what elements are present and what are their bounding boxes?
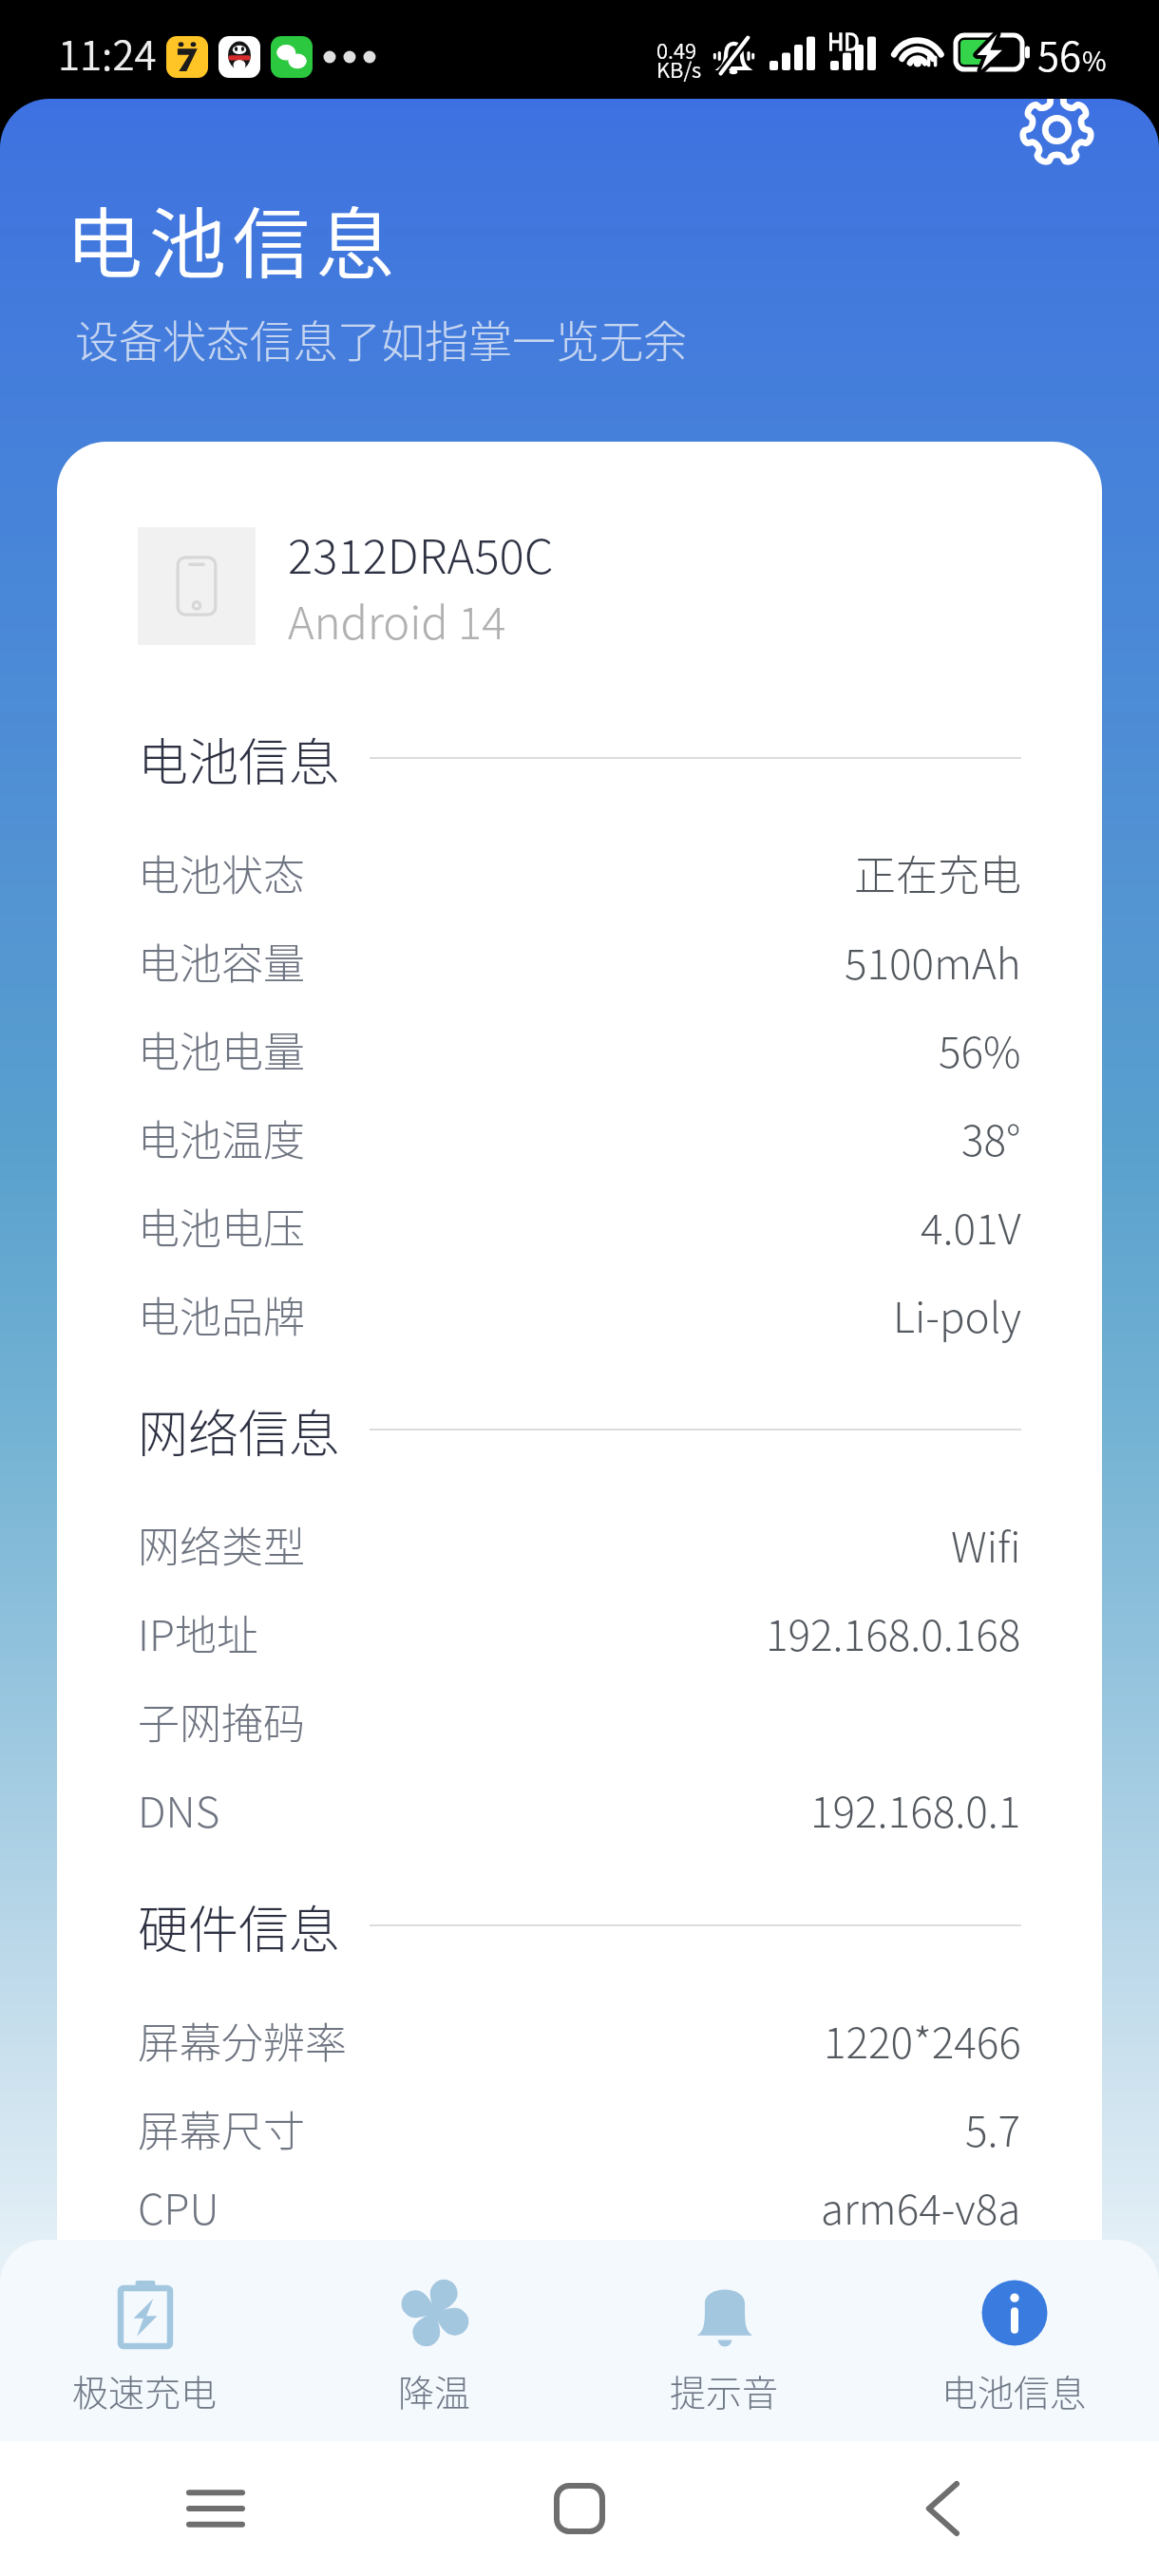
staticText: 56% (939, 1019, 1021, 1080)
button[interactable]: Recents (171, 2464, 260, 2553)
button[interactable]: Home (535, 2464, 624, 2553)
staticText: 电池容量 (138, 931, 305, 992)
staticText: HD (827, 24, 860, 57)
button[interactable]: 网络类型 (138, 1500, 1021, 1588)
staticText: 设备状态信息了如指掌一览无余 (75, 307, 687, 370)
staticText: 极速充电 (72, 2364, 218, 2416)
button[interactable]: 电池电压 (138, 1182, 1021, 1270)
staticText: 网络类型 (138, 1514, 305, 1575)
staticText: 屏幕尺寸 (138, 2098, 305, 2159)
staticText: 电池温度 (138, 1108, 305, 1168)
staticText: 正在充电 (854, 843, 1021, 903)
button[interactable]: 屏幕尺寸 (138, 2084, 1021, 2172)
staticText: 电池电压 (138, 1196, 305, 1257)
staticText: Li-poly (893, 1284, 1021, 1345)
button[interactable]: 电池信息 (869, 2240, 1159, 2416)
staticText: 网络信息 (138, 1394, 339, 1465)
button[interactable]: CPU (138, 2172, 1021, 2240)
button[interactable]: IP地址 (138, 1588, 1021, 1676)
staticText: 1220*2466 (824, 2010, 1021, 2071)
staticText: 38° (961, 1108, 1021, 1168)
staticText: 5100mAh (845, 931, 1021, 992)
staticText: Android 14 (288, 587, 506, 652)
staticText: 电池电量 (138, 1019, 305, 1080)
button[interactable]: 电池温度 (138, 1093, 1021, 1182)
button[interactable]: 电池品牌 (138, 1270, 1021, 1358)
staticText: 降温 (398, 2364, 471, 2416)
button[interactable]: 屏幕分辨率 (138, 1996, 1021, 2084)
staticText: 屏幕分辨率 (138, 2010, 347, 2071)
button[interactable]: DNS (138, 1765, 1021, 1853)
staticText: 2312DRA50C (288, 520, 554, 587)
button[interactable]: 极速充电 (0, 2240, 290, 2416)
staticText: 11:24 (58, 24, 157, 82)
staticText: Wifi (951, 1514, 1021, 1575)
button[interactable]: Back (899, 2464, 988, 2553)
button[interactable]: 电池电量 (138, 1005, 1021, 1093)
staticText: 5.7 (965, 2098, 1021, 2159)
staticText: 4.01V (921, 1196, 1021, 1257)
staticText: 子网掩码 (138, 1691, 305, 1752)
staticText: arm64-v8a (821, 2176, 1021, 2237)
staticText: 提示音 (670, 2364, 779, 2416)
staticText: 56 (1037, 25, 1082, 83)
staticText: 电池信息 (66, 182, 401, 294)
staticText: 0.49 (656, 34, 697, 65)
staticText: 硬件信息 (138, 1890, 339, 1960)
button[interactable]: 电池状态 (138, 828, 1021, 917)
staticText: % (1082, 41, 1107, 80)
button[interactable]: 降温 (290, 2240, 579, 2416)
staticText: IP地址 (138, 1602, 258, 1663)
button[interactable]: 子网掩码 (138, 1676, 1021, 1765)
staticText: DNS (138, 1779, 220, 1840)
button[interactable]: 提示音 (579, 2240, 869, 2416)
button[interactable]: 电池容量 (138, 917, 1021, 1005)
staticText: CPU (138, 2176, 219, 2237)
staticText: 电池信息 (138, 723, 339, 793)
staticText: KB/s (656, 53, 702, 84)
staticText: 192.168.0.168 (766, 1602, 1021, 1663)
staticText: 192.168.0.1 (810, 1779, 1021, 1840)
staticText: 电池状态 (138, 843, 305, 903)
staticText: 电池信息 (941, 2364, 1087, 2416)
staticText: 电池品牌 (138, 1284, 305, 1345)
button[interactable]: Settings (1010, 99, 1103, 176)
